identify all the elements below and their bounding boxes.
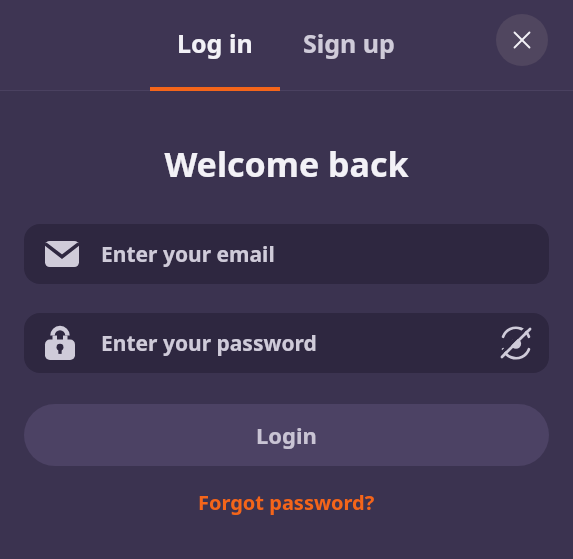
button[interactable]: Forgot password? <box>190 485 383 520</box>
button[interactable]: Enter your password <box>24 313 549 373</box>
button[interactable]: Log in <box>150 0 280 91</box>
staticText: Welcome back <box>0 141 573 187</box>
staticText: Enter your password <box>101 329 317 358</box>
button[interactable]: Enter your email <box>24 224 549 284</box>
button[interactable]: Sign up <box>288 0 410 91</box>
staticText: Sign up <box>303 26 395 60</box>
staticText: Log in <box>177 26 253 60</box>
staticText: Login <box>256 420 317 450</box>
button[interactable]: Login <box>24 404 549 466</box>
staticText: Enter your email <box>101 240 275 269</box>
button[interactable]: Show password <box>492 319 540 367</box>
button[interactable]: Close <box>496 14 548 66</box>
staticText: Forgot password? <box>198 489 375 516</box>
